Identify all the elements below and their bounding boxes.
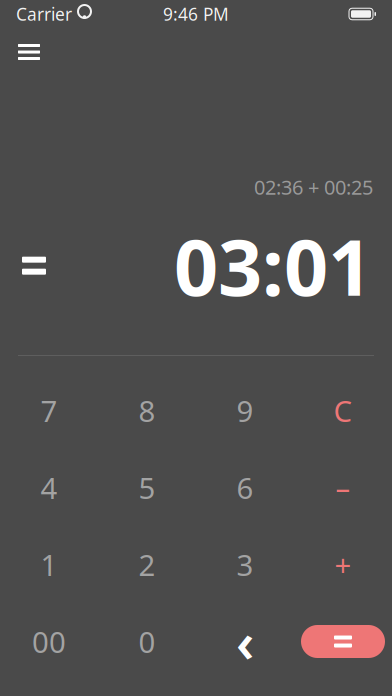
- button[interactable]: 3: [196, 526, 294, 603]
- staticText: 7: [40, 391, 57, 430]
- button[interactable]: 8: [98, 372, 196, 449]
- staticText: 9:46 PM: [163, 2, 229, 25]
- button[interactable]: 4: [0, 449, 98, 526]
- button[interactable]: 7: [0, 372, 98, 449]
- staticText: 3: [236, 545, 253, 584]
- button[interactable]: Delete: [196, 603, 294, 680]
- button[interactable]: –: [294, 449, 392, 526]
- button[interactable]: 5: [98, 449, 196, 526]
- staticText: 2: [138, 545, 155, 584]
- staticText: 03:01: [174, 214, 372, 317]
- staticText: –: [335, 468, 350, 507]
- button[interactable]: 1: [0, 526, 98, 603]
- staticText: 0: [138, 622, 155, 661]
- staticText: 5: [138, 468, 155, 507]
- staticText: C: [333, 391, 352, 430]
- staticText: 02:36 + 00:25: [254, 174, 373, 200]
- staticText: 4: [40, 468, 57, 507]
- button[interactable]: +: [294, 526, 392, 603]
- staticText: 9: [236, 391, 253, 430]
- staticText: +: [334, 545, 351, 584]
- staticText: 00: [32, 622, 66, 661]
- staticText: Carrier: [16, 2, 72, 25]
- button[interactable]: Menu: [6, 32, 52, 72]
- staticText: 8: [138, 391, 155, 430]
- button[interactable]: Equals: [301, 625, 385, 658]
- button[interactable]: C: [294, 372, 392, 449]
- button[interactable]: 2: [98, 526, 196, 603]
- staticText: ‹: [236, 606, 254, 677]
- button[interactable]: 0: [98, 603, 196, 680]
- button[interactable]: 00: [0, 603, 98, 680]
- staticText: 6: [236, 468, 253, 507]
- staticText: 1: [40, 545, 57, 584]
- button[interactable]: 6: [196, 449, 294, 526]
- button[interactable]: 9: [196, 372, 294, 449]
